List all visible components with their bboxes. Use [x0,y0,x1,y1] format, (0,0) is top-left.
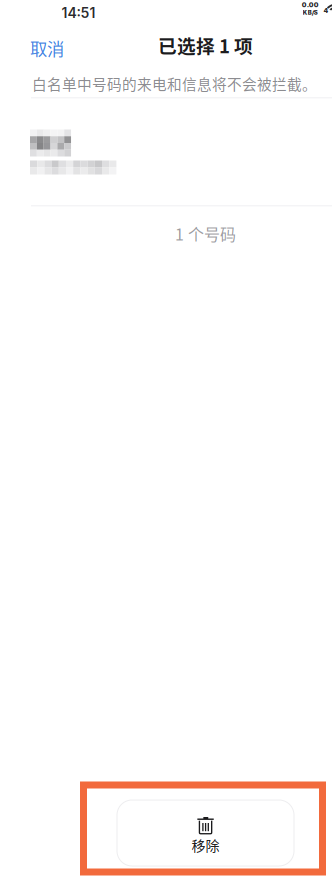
staticText: KB/S [303,9,318,16]
button[interactable]: 取消 [14,26,80,70]
staticText: 4 [323,6,328,15]
staticText: 白名单中号码的来电和信息将不会被拦截。 [32,73,317,94]
staticText: 移除 [191,835,219,855]
staticText: 取消 [30,35,64,61]
button[interactable]: 移除 [117,800,294,866]
staticText: 1 个号码 [175,222,236,245]
staticText: 14:51 [61,4,95,21]
staticText: 0.00 [302,1,319,9]
staticText: 已选择 1 项 [158,31,253,58]
button[interactable]: 白名单号码 [0,99,332,205]
